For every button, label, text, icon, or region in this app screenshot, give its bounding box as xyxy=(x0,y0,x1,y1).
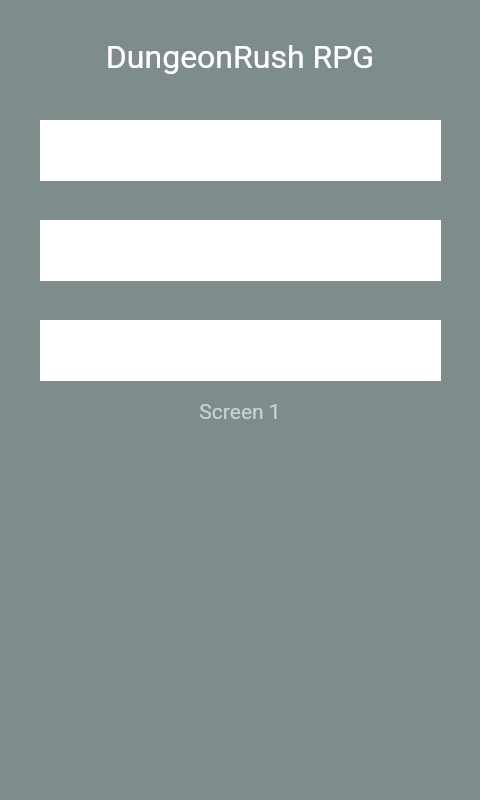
staticText: Screen 1 xyxy=(0,400,480,425)
staticText: DungeonRush RPG xyxy=(0,38,480,76)
